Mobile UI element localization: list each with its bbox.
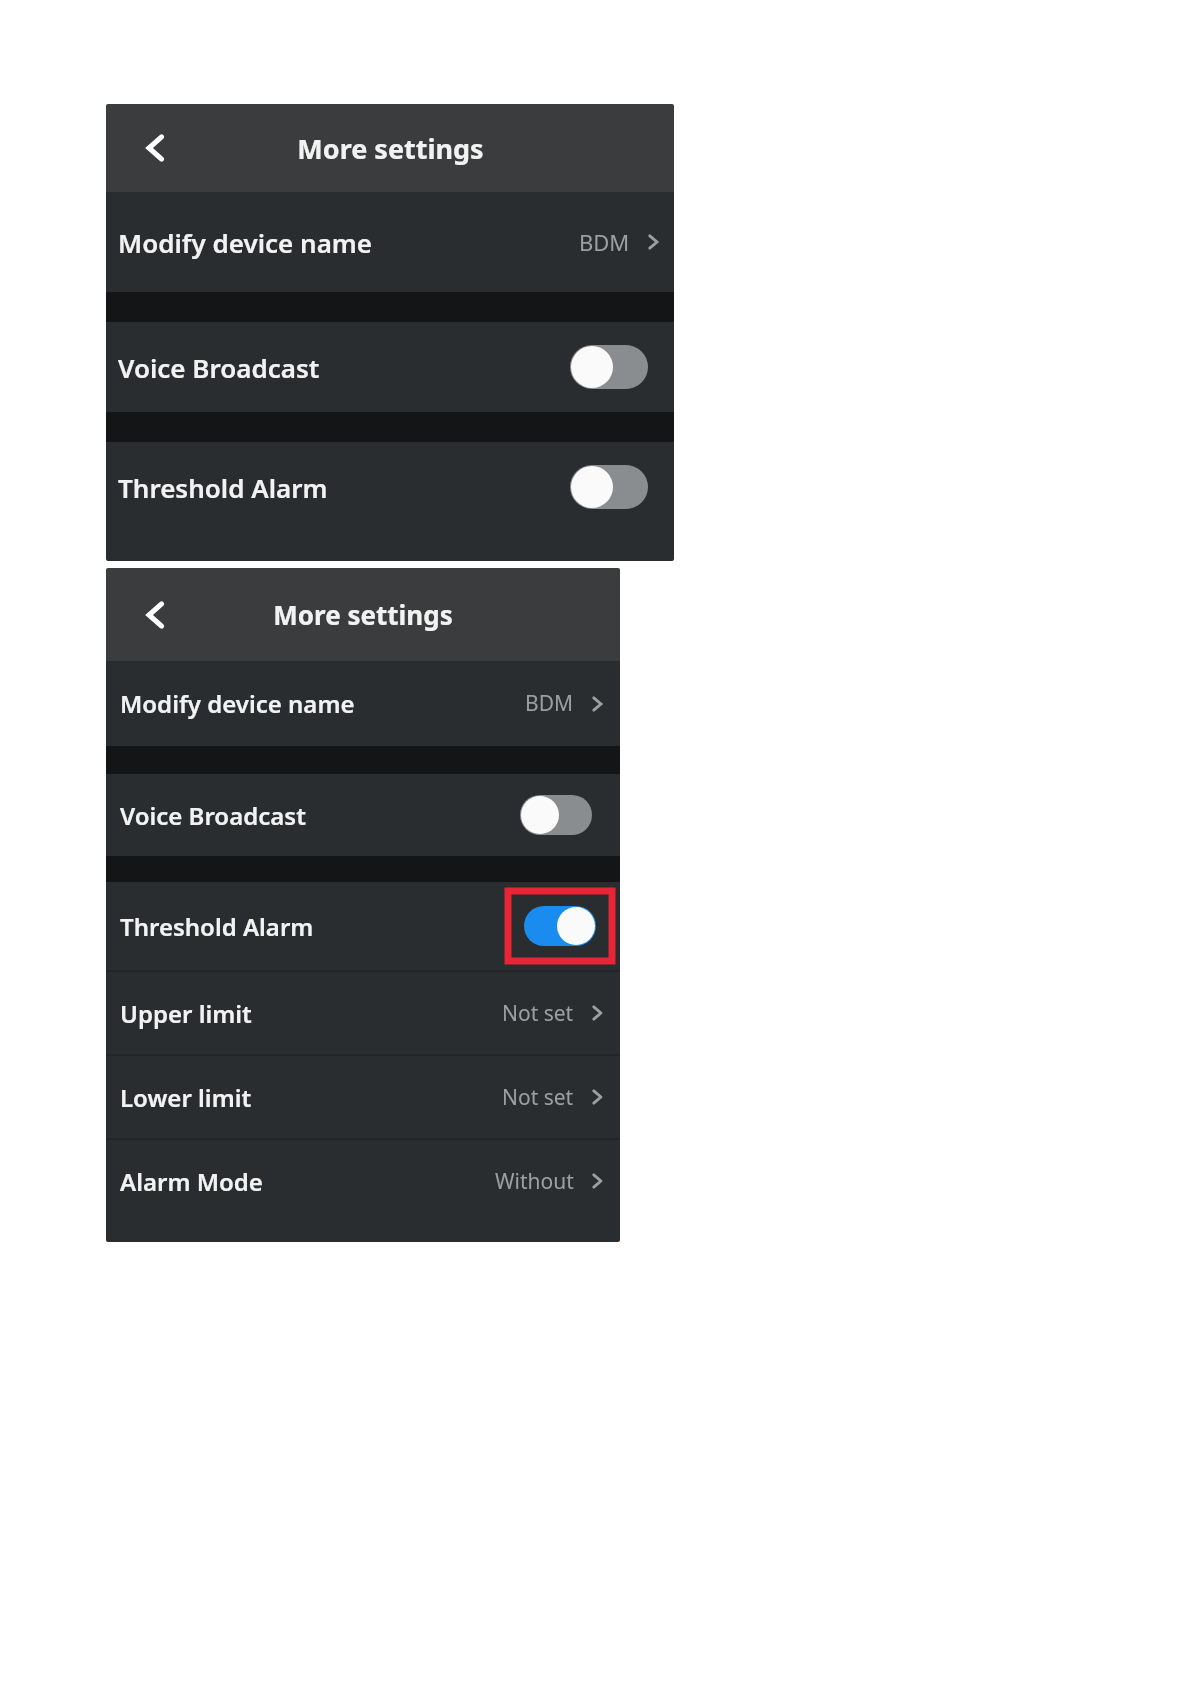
staticText: Voice Broadcast <box>118 350 320 385</box>
staticText: Threshold Alarm <box>118 470 328 505</box>
button[interactable]: Back <box>126 119 184 177</box>
staticText: More settings <box>273 597 453 632</box>
button[interactable]: Toggle <box>570 465 648 509</box>
staticText: Not set <box>502 1083 574 1112</box>
button[interactable]: Modify device name <box>106 661 620 746</box>
button[interactable]: Toggle <box>570 345 648 389</box>
staticText: Modify device name <box>120 687 355 720</box>
staticText: Alarm Mode <box>120 1165 263 1198</box>
staticText: Modify device name <box>118 225 373 260</box>
staticText: Not set <box>502 999 574 1028</box>
button[interactable]: Modify device name <box>106 192 674 292</box>
button[interactable]: Threshold Alarm <box>106 882 620 970</box>
button[interactable]: Voice Broadcast <box>106 322 674 412</box>
button[interactable]: Back <box>126 586 184 644</box>
button[interactable]: Alarm Mode <box>106 1140 620 1222</box>
staticText: Upper limit <box>120 997 252 1030</box>
button[interactable]: Upper limit <box>106 972 620 1054</box>
button[interactable]: Voice Broadcast <box>106 774 620 856</box>
staticText: Without <box>495 1167 574 1196</box>
staticText: Voice Broadcast <box>120 799 306 832</box>
staticText: BDM <box>525 689 574 718</box>
staticText: Lower limit <box>120 1081 252 1114</box>
staticText: More settings <box>297 130 484 167</box>
staticText: BDM <box>579 227 630 257</box>
button[interactable]: Lower limit <box>106 1056 620 1138</box>
button[interactable]: Toggle <box>524 906 596 946</box>
button[interactable]: Threshold Alarm <box>106 442 674 532</box>
staticText: Threshold Alarm <box>120 910 314 943</box>
button[interactable]: Toggle <box>520 795 592 835</box>
